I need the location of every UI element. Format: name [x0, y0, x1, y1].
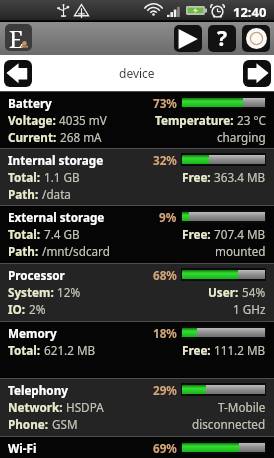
staticText: T-Mobile: [218, 399, 266, 415]
button[interactable]: Next: [243, 60, 271, 87]
staticText: Processor: [8, 267, 65, 283]
staticText: 707.4 MB: [211, 226, 266, 242]
button[interactable]: Settings: [242, 25, 270, 52]
staticText: System:: [8, 284, 54, 300]
staticText: Battery: [8, 95, 52, 111]
staticText: Internal storage: [8, 152, 104, 168]
button[interactable]: External storage: [0, 205, 274, 263]
staticText: 621.2 MB: [41, 342, 96, 358]
staticText: Path:: [8, 186, 39, 202]
staticText: 68%: [153, 267, 177, 283]
staticText: 268 mA: [57, 129, 102, 145]
button[interactable]: Telephony: [0, 378, 274, 436]
staticText: charging: [217, 129, 266, 145]
staticText: Total:: [8, 342, 41, 358]
staticText: 7.4 GB: [41, 226, 80, 242]
staticText: Free:: [182, 342, 211, 358]
staticText: 29%: [153, 382, 177, 398]
staticText: Phone:: [8, 416, 49, 432]
staticText: E: [9, 24, 24, 50]
staticText: 9%: [159, 209, 177, 225]
staticText: 69%: [153, 440, 177, 456]
staticText: Telephony: [8, 382, 68, 398]
staticText: Voltage:: [8, 112, 56, 128]
staticText: 4035 mV: [56, 112, 107, 128]
button[interactable]: Previous: [4, 60, 32, 87]
staticText: 2%: [26, 301, 46, 317]
staticText: Free:: [182, 226, 211, 242]
staticText: 73%: [153, 95, 177, 111]
staticText: 18%: [153, 325, 177, 341]
staticText: 363.4 MB: [211, 169, 266, 185]
button[interactable]: Internal storage: [0, 148, 274, 205]
button[interactable]: Play: [174, 25, 202, 52]
staticText: 32%: [153, 152, 177, 168]
staticText: Path:: [8, 243, 39, 259]
staticText: 1 GHz: [233, 301, 266, 317]
staticText: HSDPA: [63, 399, 104, 415]
staticText: 111.2 MB: [211, 342, 266, 358]
button[interactable]: App menu: [5, 24, 32, 51]
staticText: disconnected: [192, 416, 266, 432]
staticText: Current:: [8, 129, 57, 145]
button[interactable]: Memory: [0, 321, 274, 378]
staticText: /mnt/sdcard: [39, 243, 110, 259]
staticText: mounted: [215, 243, 266, 259]
staticText: /data: [39, 186, 71, 202]
staticText: User:: [208, 284, 239, 300]
button[interactable]: Wi-Fi: [0, 436, 274, 458]
staticText: Wi-Fi: [8, 440, 37, 456]
staticText: Memory: [8, 325, 57, 341]
staticText: 23 °C: [234, 112, 266, 128]
staticText: Total:: [8, 226, 41, 242]
staticText: Free:: [182, 169, 211, 185]
staticText: 12:40: [233, 3, 267, 21]
staticText: 1.1 GB: [41, 169, 80, 185]
staticText: ?: [217, 25, 228, 51]
staticText: IO:: [8, 301, 26, 317]
staticText: External storage: [8, 209, 105, 225]
button[interactable]: Processor: [0, 263, 274, 321]
staticText: GSM: [49, 416, 78, 432]
button[interactable]: Help: [208, 25, 236, 52]
button[interactable]: Battery: [0, 91, 274, 148]
staticText: device: [119, 65, 155, 81]
staticText: 12%: [54, 284, 81, 300]
staticText: Temperature:: [155, 112, 234, 128]
staticText: 54%: [239, 284, 266, 300]
staticText: Network:: [8, 399, 63, 415]
staticText: Total:: [8, 169, 41, 185]
